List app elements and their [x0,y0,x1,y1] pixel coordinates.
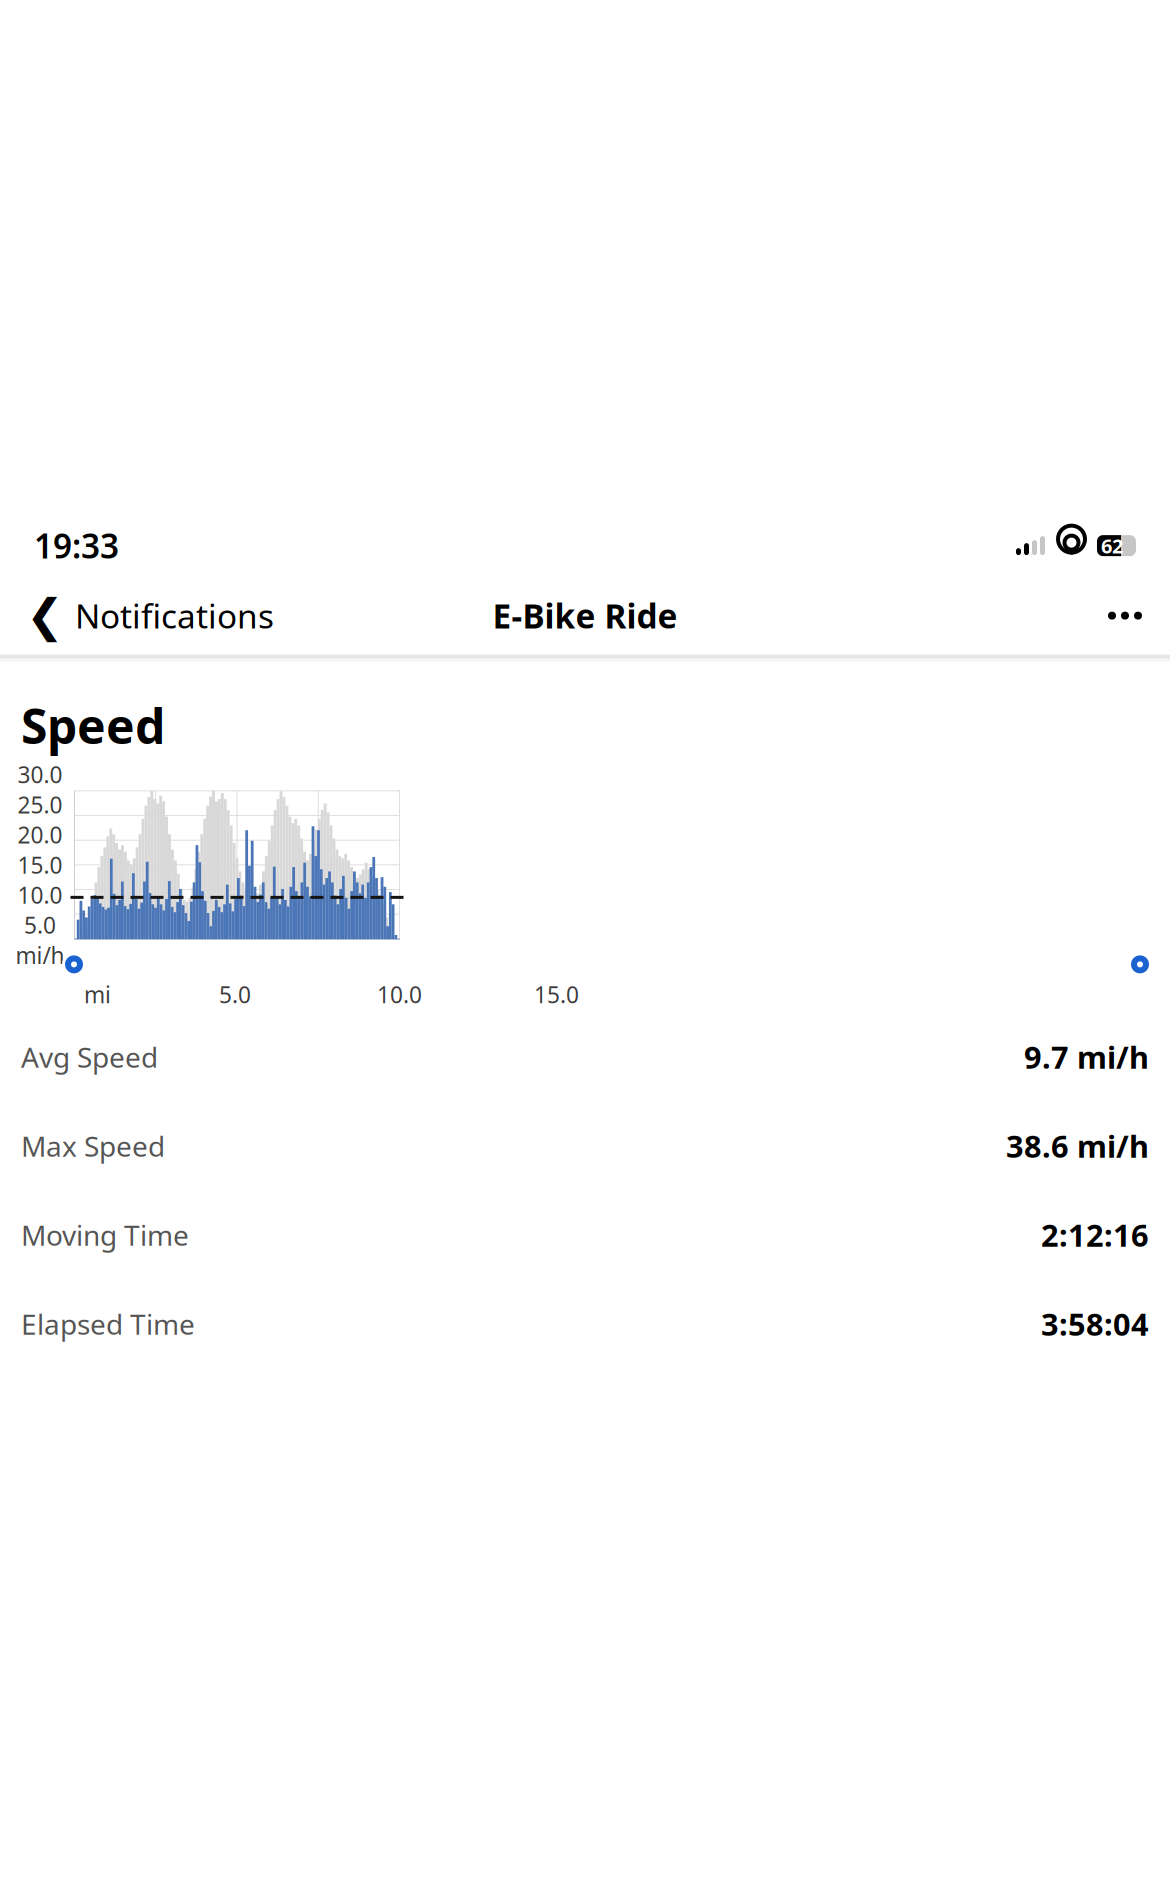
staticText: 2:12:16 [1041,1214,1149,1255]
staticText: mi/h [15,940,64,970]
button[interactable]: Avg Speed [0,1012,1170,1101]
staticText: 10.0 [377,979,422,1009]
staticText: 38.6 mi/h [1006,1125,1149,1166]
staticText: mi [84,979,111,1009]
staticText: Elapsed Time [21,1305,195,1342]
staticText: 30.0 [17,759,62,790]
button[interactable]: Max Speed [0,1101,1170,1190]
staticText: 5.0 [24,910,56,940]
button[interactable]: Moving Time [0,1190,1170,1279]
staticText: 3:58:04 [1041,1303,1149,1344]
staticText: 9.7 mi/h [1024,1036,1149,1077]
staticText: 5.0 [219,979,251,1009]
staticText: Moving Time [21,1216,189,1253]
staticText: Speed [21,694,165,757]
staticText: E-Bike Ride [492,593,677,638]
staticText: Notifications [75,593,274,638]
button[interactable]: ❮ [16,587,284,645]
staticText: Max Speed [21,1127,165,1164]
staticText: 10.0 [17,880,62,910]
button[interactable]: Elapsed Time [0,1279,1170,1368]
staticText: ❮ [26,590,64,641]
staticText: 20.0 [17,820,62,850]
staticText: Avg Speed [21,1038,158,1075]
staticText: 62 [1101,532,1123,559]
staticText: 15.0 [534,979,579,1009]
staticText: 25.0 [17,790,62,820]
staticText: 15.0 [17,850,62,880]
staticText: 19:33 [34,523,119,568]
button[interactable]: More options [1096,587,1154,645]
